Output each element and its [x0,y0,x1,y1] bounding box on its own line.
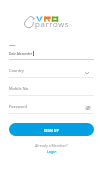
staticText: parrows [35,18,70,29]
button[interactable]: Login [47,149,57,154]
staticText: Name [9,44,16,47]
staticText: Mobile No. [9,86,30,91]
staticText: Country [9,68,24,73]
button[interactable]: Select country [84,70,90,76]
button[interactable]: Show password [84,104,92,112]
button[interactable]: SIGN UP [9,123,94,136]
staticText: Login [47,149,57,154]
staticText: Password [9,104,27,109]
staticText: SIGN UP [44,128,59,132]
staticText: Dale Alexander [9,52,33,56]
staticText: Already a Member? [35,143,68,148]
